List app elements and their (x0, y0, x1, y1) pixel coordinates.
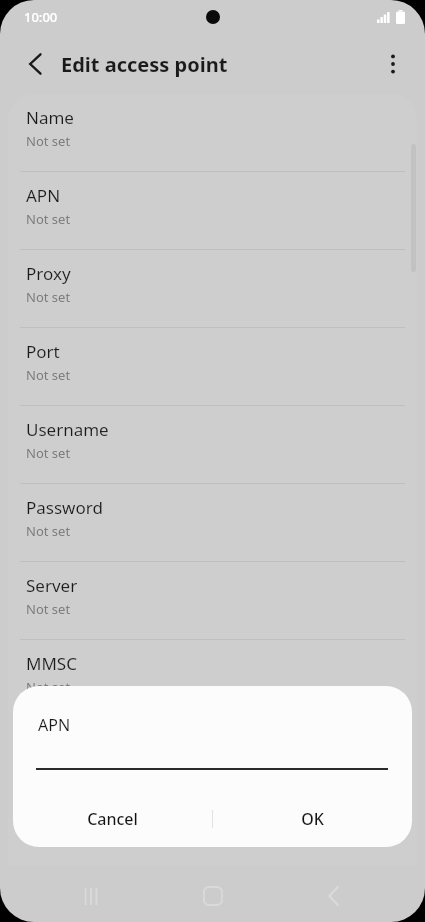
staticText: Proxy (26, 262, 71, 285)
button[interactable]: OK (213, 791, 412, 847)
staticText: Not set (26, 366, 71, 384)
staticText: Not set (26, 288, 71, 306)
staticText: Not set (26, 678, 71, 696)
button[interactable]: Port (8, 328, 417, 405)
staticText: MMSC (26, 652, 77, 675)
staticText: APN (26, 184, 61, 207)
staticText: Edit access point (61, 51, 228, 78)
staticText: OK (301, 808, 324, 830)
button[interactable]: APN (8, 172, 417, 249)
button[interactable]: Password (8, 484, 417, 561)
staticText: Not set (26, 210, 71, 228)
staticText: Server (26, 574, 78, 597)
staticText: 10:00 (24, 8, 58, 26)
button[interactable]: Username (8, 406, 417, 483)
staticText: Password (26, 496, 103, 519)
staticText: Not set (26, 132, 71, 150)
button[interactable]: MMSC (8, 640, 417, 717)
staticText: Not set (26, 600, 71, 618)
button[interactable]: MMS proxy (8, 718, 417, 795)
staticText: Not set (26, 756, 71, 774)
staticText: Cancel (87, 808, 138, 830)
button[interactable]: Proxy (8, 250, 417, 327)
staticText: Name (26, 106, 74, 129)
staticText: Not set (26, 444, 71, 462)
staticText: Port (26, 340, 60, 363)
staticText: MMS proxy (26, 730, 116, 753)
button[interactable]: Cancel (13, 791, 212, 847)
staticText: APN (38, 714, 71, 736)
button[interactable]: Name (8, 94, 417, 171)
staticText: Username (26, 418, 109, 441)
button[interactable]: More options (371, 42, 415, 86)
button[interactable]: Server (8, 562, 417, 639)
button[interactable]: Back (14, 42, 58, 86)
staticText: Not set (26, 522, 71, 540)
